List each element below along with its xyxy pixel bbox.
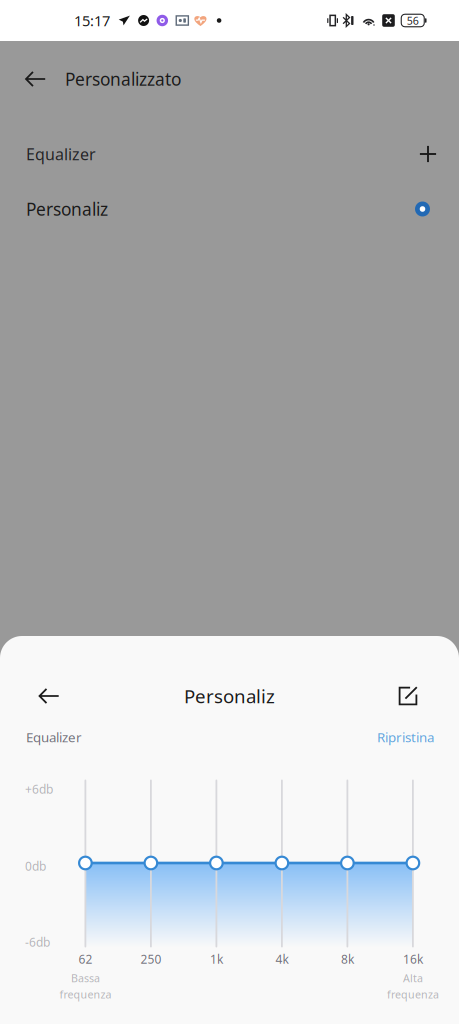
button[interactable]: Back [23,674,75,718]
staticText: Personaliz [184,684,275,708]
staticText: 0db [25,858,46,874]
staticText: +6db [25,781,53,797]
staticText: -6db [25,934,50,950]
staticText: 8k [341,951,354,967]
button[interactable]: Personaliz [0,187,459,231]
staticText: Personaliz [26,197,108,220]
staticText: frequenza [59,987,111,1001]
staticText: 16k [403,951,423,967]
staticText: Alta [403,971,423,985]
staticText: 15:17 [74,11,110,30]
staticText: Equalizer [26,143,96,165]
button[interactable]: Edit [382,674,434,718]
button[interactable]: Equalizer [0,132,459,176]
staticText: 250 [140,951,161,967]
staticText: Bassa [71,971,100,985]
staticText: 62 [78,951,92,967]
staticText: frequenza [387,987,439,1001]
staticText: Equalizer [26,728,82,746]
button[interactable]: Ripristina [377,728,434,746]
staticText: 4k [275,951,288,967]
staticText: Ripristina [377,728,434,746]
staticText: 56 [407,13,419,28]
button[interactable]: Personalizzato [0,56,300,102]
staticText: 1k [210,951,223,967]
staticText: Personalizzato [65,67,181,90]
